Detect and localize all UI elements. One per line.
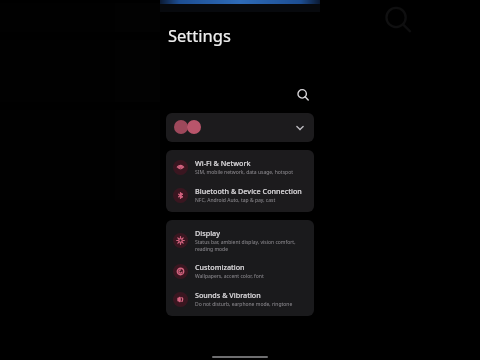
button[interactable]: Bluetooth & Device Connection	[166, 181, 314, 209]
staticText: Status bar, ambient display, vision comf…	[195, 239, 307, 252]
button[interactable]: Expand accounts	[166, 113, 314, 142]
button[interactable]: Bluetooth & Device Connection	[0, 71, 314, 99]
staticText: NFC, Android Auto, tap & pay, cast	[195, 197, 276, 204]
button[interactable]: Sounds & Vibration	[0, 169, 314, 197]
staticText: Wallpapers, accent color, font	[195, 273, 264, 280]
button[interactable]: Customization	[0, 141, 314, 169]
staticText: Bluetooth & Device Connection	[195, 186, 302, 196]
staticText: Sounds & Vibration	[195, 290, 261, 300]
button[interactable]: Sounds & Vibration	[166, 285, 314, 313]
button[interactable]: Wi-Fi & Network	[166, 153, 314, 181]
button[interactable]: Display	[0, 113, 314, 141]
button[interactable]: Search settings	[296, 88, 310, 102]
button[interactable]: Expand accounts	[294, 122, 306, 134]
button[interactable]: Customization	[166, 257, 314, 285]
staticText: Settings	[168, 24, 231, 46]
button[interactable]: Display	[166, 223, 314, 257]
staticText: Do not disturb, earphone mode, ringtone	[195, 301, 293, 308]
staticText: SIM, mobile network, data usage, hotspot	[195, 169, 293, 176]
button[interactable]: Expand accounts	[0, 3, 314, 32]
button[interactable]: Wi-Fi & Network	[0, 43, 314, 71]
staticText: Display	[195, 228, 220, 238]
staticText: Customization	[195, 262, 245, 272]
staticText: Wi-Fi & Network	[195, 158, 251, 168]
